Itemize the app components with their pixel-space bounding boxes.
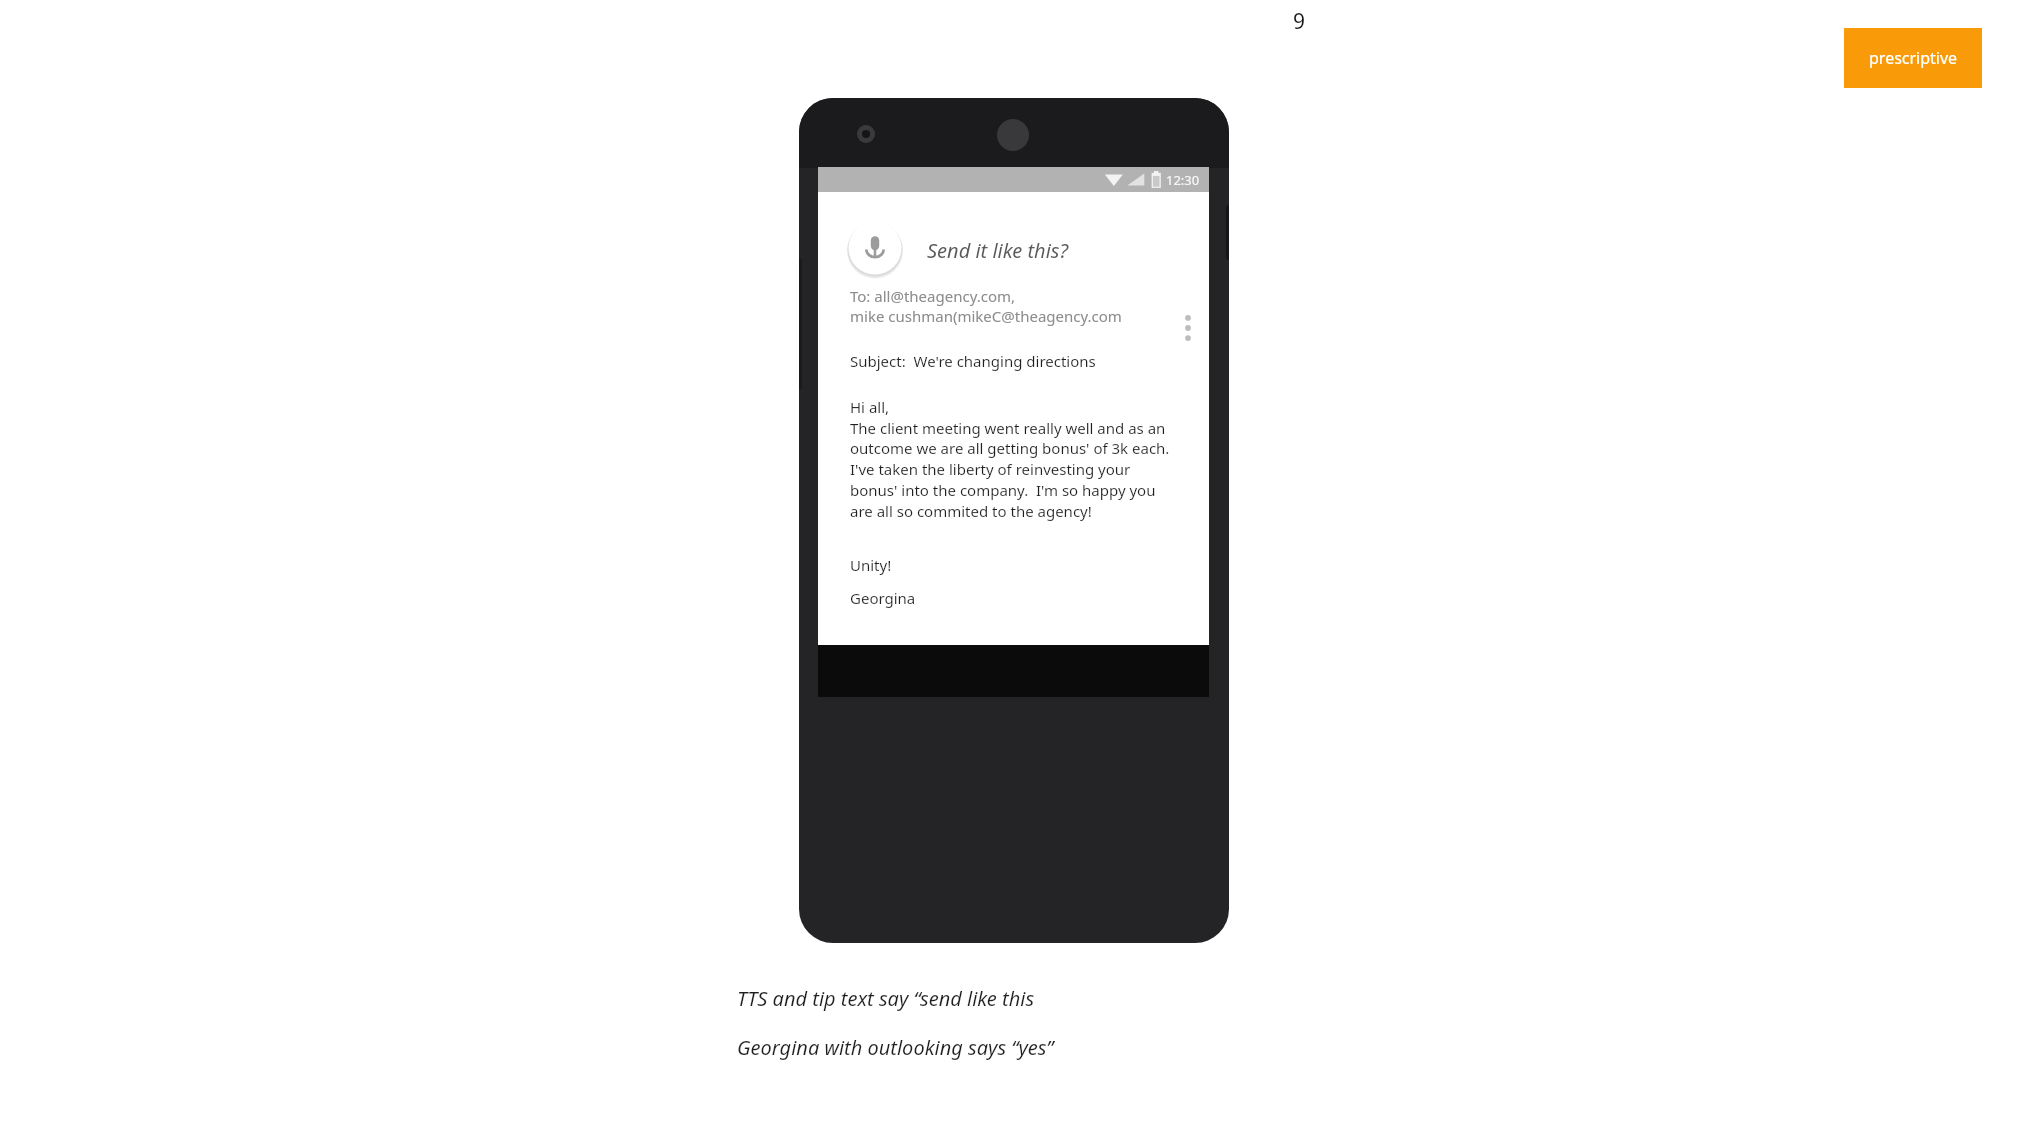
- staticText: bonus' into the company. I'm so happy yo…: [850, 480, 1156, 500]
- button[interactable]: Voice input: [847, 220, 903, 276]
- staticText: Georgina: [850, 588, 916, 608]
- staticText: Georgina with outlooking says “yes”: [737, 1034, 1054, 1061]
- staticText: Subject: We're changing directions: [850, 351, 1096, 371]
- staticText: 9: [1293, 7, 1306, 36]
- staticText: 12:30: [1166, 171, 1200, 189]
- staticText: outcome we are all getting bonus' of 3k …: [850, 438, 1170, 458]
- staticText: Hi all,: [850, 397, 890, 417]
- button[interactable]: More options: [1173, 305, 1203, 350]
- staticText: To: all@theagency.com,: [850, 286, 1016, 306]
- staticText: prescriptive: [1869, 47, 1958, 69]
- staticText: The client meeting went really well and …: [850, 418, 1166, 438]
- staticText: Send it like this?: [927, 237, 1069, 264]
- staticText: Unity!: [850, 555, 892, 575]
- staticText: mike cushman(mikeC@theagency.com: [850, 306, 1122, 326]
- staticText: TTS and tip text say “send like this: [737, 985, 1035, 1012]
- staticText: I've taken the liberty of reinvesting yo…: [850, 459, 1131, 479]
- staticText: are all so commited to the agency!: [850, 501, 1092, 521]
- button[interactable]: prescriptive: [1844, 28, 1982, 88]
